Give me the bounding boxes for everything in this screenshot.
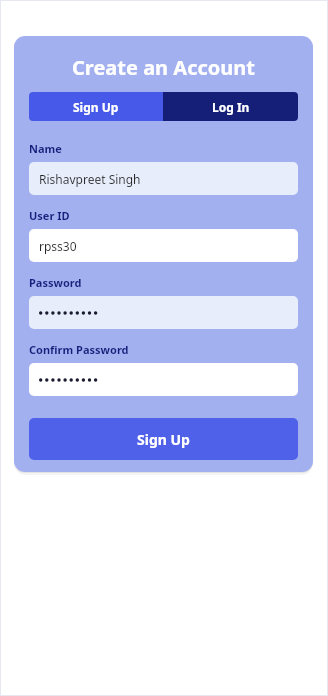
staticText: rpss30 <box>39 238 77 254</box>
staticText: Log In <box>212 99 250 115</box>
button[interactable]: Sign Up <box>29 92 163 121</box>
staticText: Confirm Password <box>29 342 129 357</box>
staticText: Password <box>29 275 82 290</box>
staticText: Sign Up <box>137 430 190 449</box>
button[interactable]: Rishavpreet Singh <box>29 162 298 195</box>
staticText: Name <box>29 141 62 156</box>
button[interactable] <box>29 363 298 396</box>
staticText: Rishavpreet Singh <box>39 171 141 187</box>
staticText: User ID <box>29 208 70 223</box>
button[interactable]: Log In <box>163 92 298 121</box>
button[interactable]: rpss30 <box>29 229 298 262</box>
staticText: Sign Up <box>73 99 119 115</box>
button[interactable] <box>29 296 298 329</box>
staticText: Create an Account <box>14 54 313 81</box>
button[interactable]: Sign Up <box>29 418 298 460</box>
